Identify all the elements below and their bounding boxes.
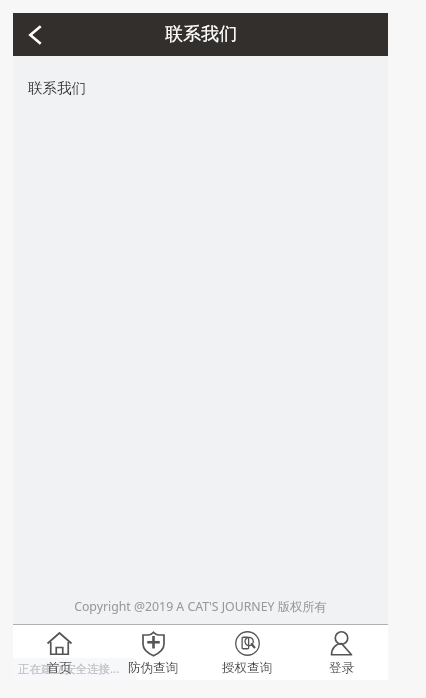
staticText: 正在建立安全连接...	[18, 661, 120, 677]
button[interactable]: Login	[294, 625, 388, 680]
staticText: 联系我们	[28, 79, 86, 97]
staticText: 首页	[47, 660, 72, 676]
button[interactable]: Authorization query	[200, 625, 294, 680]
staticText: 授权查询	[222, 660, 272, 676]
staticText: 防伪查询	[128, 660, 178, 676]
button[interactable]: Home	[13, 625, 106, 680]
staticText: Copyright @2019 A CAT'S JOURNEY 版权所有	[13, 598, 388, 615]
button[interactable]: Back	[13, 13, 57, 56]
staticText: 登录	[329, 660, 354, 676]
button[interactable]: Anti-counterfeit query	[106, 625, 200, 680]
staticText: 联系我们	[165, 23, 237, 46]
